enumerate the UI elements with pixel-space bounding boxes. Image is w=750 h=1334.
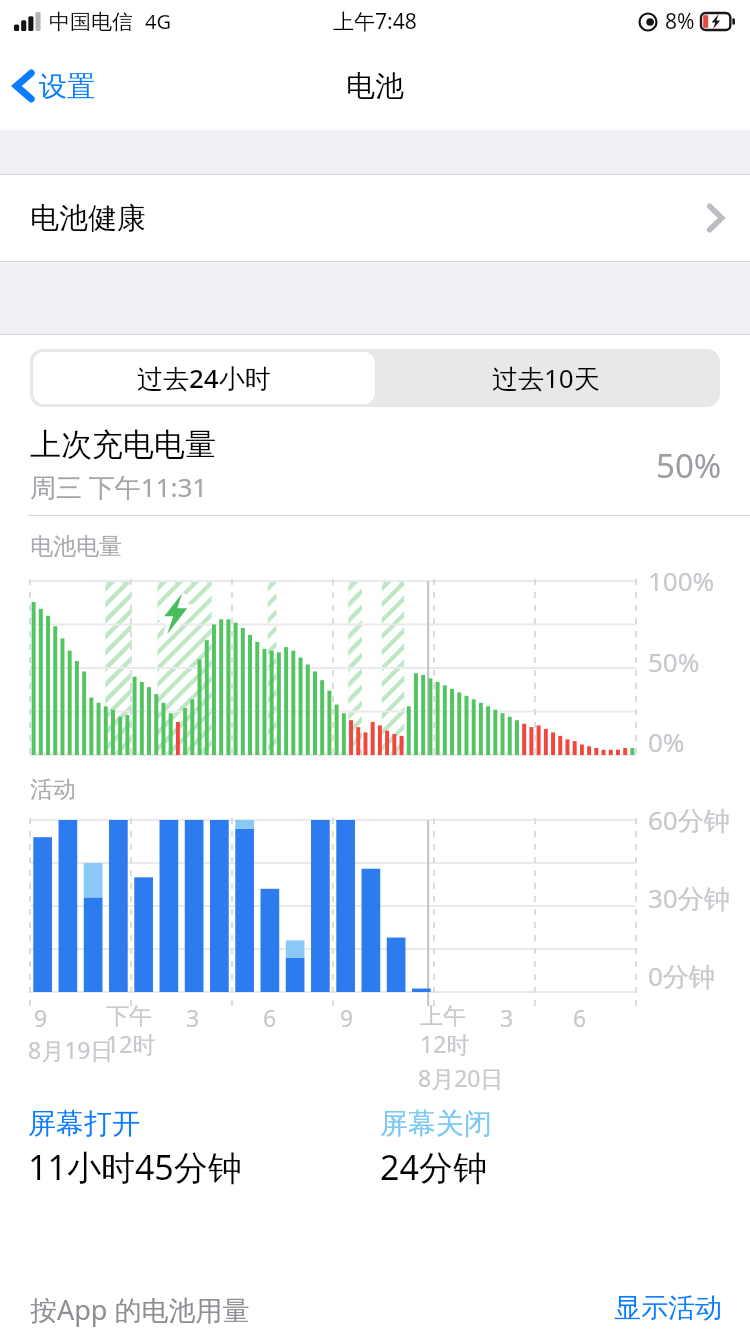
button[interactable]: 设置 [0, 57, 109, 115]
staticText: 活动 [30, 775, 76, 804]
button[interactable]: 过去24小时 [33, 352, 375, 404]
staticText: 上次充电电量 [30, 425, 216, 464]
staticText: 24分钟 [380, 1144, 487, 1190]
staticText: 屏幕关闭 [380, 1106, 492, 1141]
staticText: 30分钟 [648, 880, 730, 916]
staticText: 50% [648, 644, 700, 679]
staticText: 9 [340, 1002, 354, 1033]
staticText: 4G [145, 8, 171, 35]
staticText: 上午7:48 [333, 7, 417, 36]
staticText: 11小时45分钟 [28, 1144, 242, 1190]
staticText: 过去24小时 [137, 360, 271, 396]
staticText: 3 [500, 1002, 514, 1033]
staticText: 6 [573, 1002, 587, 1033]
staticText: 9 [34, 1002, 48, 1033]
staticText: 60分钟 [648, 802, 730, 838]
staticText: 中国电信 [49, 9, 133, 35]
staticText: 0分钟 [648, 958, 715, 994]
staticText: 屏幕打开 [28, 1106, 140, 1141]
staticText: 8月19日 [28, 1034, 114, 1065]
staticText: 过去10天 [492, 360, 600, 396]
staticText: 6 [263, 1002, 277, 1033]
staticText: 周三 下午11:31 [30, 469, 208, 505]
staticText: 8月20日 [418, 1062, 504, 1093]
staticText: 8% [665, 7, 695, 36]
staticText: 3 [186, 1002, 200, 1033]
staticText: 电池健康 [30, 200, 146, 237]
staticText: 上午 12时 [420, 1002, 470, 1060]
staticText: 设置 [39, 69, 95, 104]
staticText: 电池 [346, 68, 404, 105]
staticText: 50% [656, 443, 722, 488]
staticText: 0% [648, 724, 685, 759]
staticText: 电池电量 [30, 532, 122, 561]
button[interactable]: 电池健康 [0, 175, 750, 261]
button[interactable]: 过去10天 [375, 352, 717, 404]
staticText: 按App 的电池用量 [30, 1291, 250, 1328]
staticText: 100% [648, 563, 715, 598]
staticText: 显示活动 [614, 1291, 722, 1325]
staticText: 下午 12时 [106, 1002, 156, 1060]
